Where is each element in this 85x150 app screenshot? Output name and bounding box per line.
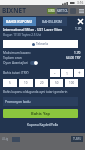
staticText: BAHISLERIM [42, 19, 62, 24]
button[interactable]: Kuponu Kaydet/Yolla [0, 121, 85, 129]
button[interactable]: KAYIT OL [57, 8, 68, 14]
button[interactable]: Increase [74, 69, 84, 77]
staticText: Maksimum kazanc [3, 51, 31, 55]
button[interactable]: Promosyon kodu [3, 97, 78, 106]
button[interactable]: TUMU [71, 136, 83, 142]
button[interactable]: 50 [50, 79, 63, 87]
staticText: 50 [55, 81, 59, 85]
staticText: TUMU [73, 137, 82, 141]
button[interactable]: BAHIS KUPONU [3, 17, 36, 26]
staticText: 1.70 [75, 27, 82, 31]
button[interactable]: 5 [3, 79, 17, 87]
staticText: Toplam oran [3, 56, 22, 60]
button[interactable]: Decrease [50, 69, 60, 77]
staticText: Bahis tutari (TRY) [3, 71, 29, 75]
button[interactable]: Toggle game advantages [30, 61, 38, 65]
staticText: + [78, 70, 81, 76]
button[interactable]: 1 [61, 69, 73, 77]
button[interactable]: BIXNET [2, 6, 26, 15]
button[interactable]: 10 [19, 79, 33, 87]
button[interactable]: Close [75, 16, 85, 26]
button[interactable]: Menu [78, 8, 84, 14]
staticText: - [54, 70, 56, 76]
staticText: KAYIT OL [57, 9, 68, 13]
staticText: Kuponu Kaydet/Yolla [27, 123, 59, 127]
staticText: Bugun 17:30 Taytex 2.5 Ust [3, 33, 42, 37]
button[interactable]: Tekrarla [3, 40, 78, 48]
button[interactable]: 100 [65, 79, 78, 87]
staticText: 5 [9, 81, 11, 85]
button[interactable]: GIRIS [47, 8, 55, 14]
staticText: 64.00 TRY [66, 56, 81, 60]
button[interactable]: 20 [35, 79, 48, 87]
staticText: 1.70 [74, 51, 81, 55]
staticText: International Milan - U21 Lazer Vitex Bo… [3, 27, 75, 32]
staticText: GIRIS [48, 9, 55, 13]
staticText: Bahis kuponu oldugunda ayni tutari gonde… [3, 90, 68, 94]
staticText: Tekrarla [36, 42, 49, 46]
button[interactable]: BAHISLERIM [36, 17, 67, 26]
button[interactable]: Bahis Yap [3, 109, 78, 118]
staticText: 1 [66, 71, 68, 76]
staticText: 4 Lig [2, 137, 9, 141]
staticText: Oyun Avantajlari [3, 61, 28, 65]
staticText: Bahis Yap [31, 111, 51, 116]
staticText: 3:16 [77, 1, 84, 5]
staticText: Promosyon kodu [5, 100, 31, 104]
staticText: 10 [24, 81, 28, 85]
staticText: BIXNET [2, 6, 26, 15]
staticText: 100 [69, 81, 75, 85]
staticText: 20 [40, 81, 44, 85]
staticText: BAHIS KUPONU [6, 19, 33, 24]
